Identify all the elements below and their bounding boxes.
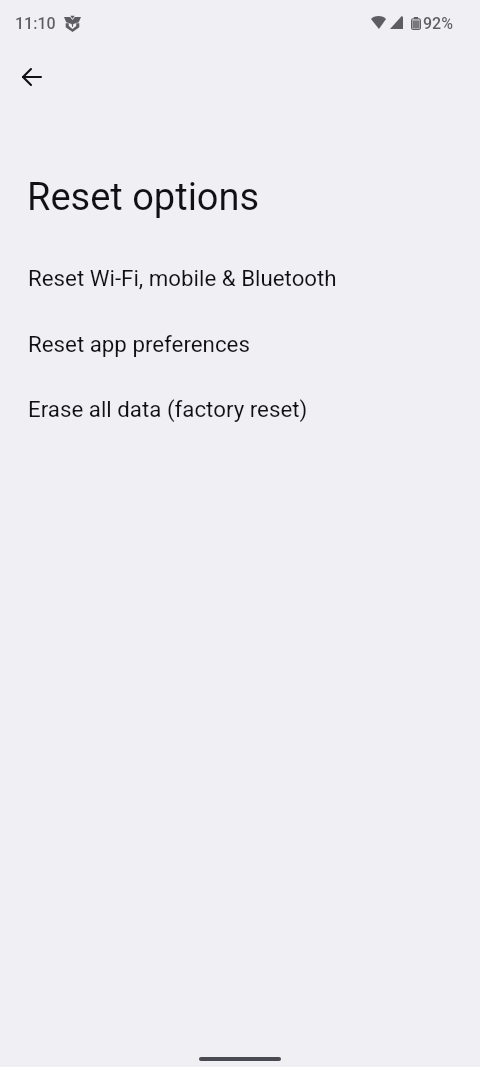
staticText: 92% (423, 14, 453, 33)
button[interactable]: Erase all data (factory reset) (0, 376, 480, 441)
staticText: Reset app preferences (28, 331, 250, 357)
button[interactable]: Reset Wi-Fi, mobile & Bluetooth (0, 245, 480, 310)
staticText: 11:10 (15, 14, 56, 33)
staticText: Erase all data (factory reset) (28, 396, 308, 422)
button[interactable]: Reset app preferences (0, 311, 480, 376)
staticText: Reset options (27, 175, 260, 220)
button[interactable]: Navigate up (8, 53, 56, 101)
staticText: Reset Wi-Fi, mobile & Bluetooth (28, 265, 337, 291)
